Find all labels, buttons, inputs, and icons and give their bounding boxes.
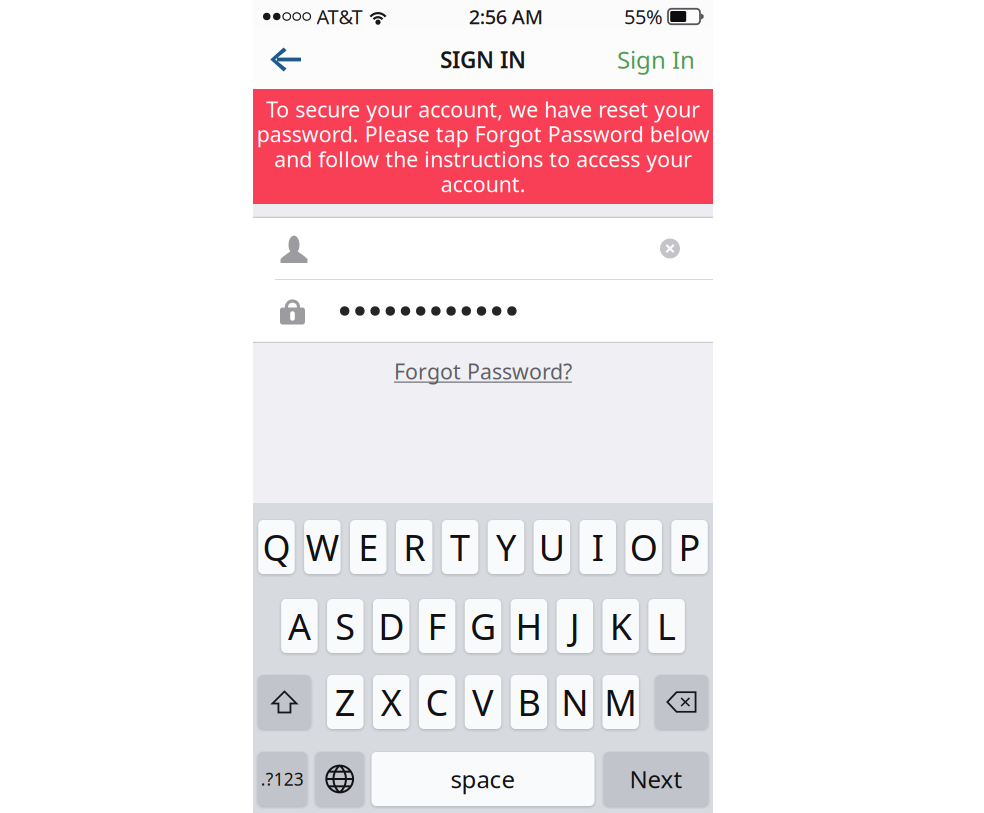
staticText: Z — [335, 678, 356, 726]
staticText: V — [472, 678, 494, 726]
staticText: T — [450, 523, 470, 571]
button[interactable]: Sign In — [603, 29, 713, 90]
staticText: space — [450, 763, 515, 795]
staticText: Y — [496, 523, 516, 571]
staticText: D — [378, 602, 404, 650]
staticText: To secure your account, we have reset yo… — [256, 95, 709, 198]
staticText: Q — [262, 523, 290, 571]
staticText: N — [561, 678, 588, 726]
staticText: Next — [629, 763, 682, 795]
staticText: W — [306, 523, 339, 571]
button[interactable]: Next keyboard — [315, 752, 364, 806]
button[interactable]: Q — [258, 520, 295, 574]
button[interactable]: Y — [488, 520, 524, 574]
button[interactable]: C — [419, 675, 455, 729]
staticText: C — [426, 678, 449, 726]
button[interactable]: N — [556, 675, 593, 729]
button[interactable]: V — [465, 675, 501, 729]
button[interactable]: D — [373, 599, 409, 653]
staticText: G — [470, 602, 496, 650]
staticText: U — [539, 523, 565, 571]
staticText: F — [428, 602, 447, 650]
button[interactable]: Delete — [655, 675, 708, 729]
staticText: X — [381, 678, 402, 726]
button[interactable]: Shift — [258, 675, 311, 729]
staticText: K — [610, 602, 632, 650]
button[interactable]: R — [396, 520, 432, 574]
button[interactable]: X — [373, 675, 409, 729]
button[interactable]: J — [556, 599, 593, 653]
staticText: Sign In — [617, 44, 695, 75]
button[interactable]: A — [281, 599, 318, 653]
button[interactable]: G — [465, 599, 501, 653]
button[interactable]: S — [327, 599, 363, 653]
staticText: A — [288, 602, 311, 650]
staticText: H — [515, 602, 542, 650]
button[interactable]: O — [625, 520, 662, 574]
staticText: R — [403, 523, 425, 571]
button[interactable]: E — [350, 520, 386, 574]
button[interactable]: P — [671, 520, 708, 574]
button[interactable]: Z — [327, 675, 363, 729]
staticText: P — [678, 523, 700, 571]
button[interactable]: Forgot Password? — [386, 353, 580, 389]
button[interactable]: space — [371, 752, 594, 806]
staticText: .?123 — [261, 767, 304, 790]
staticText: SIGN IN — [440, 44, 526, 74]
staticText: 2:56 AM — [469, 3, 543, 30]
button[interactable]: U — [534, 520, 570, 574]
button[interactable]: W — [304, 520, 341, 574]
button[interactable]: Clear text — [653, 231, 687, 265]
button[interactable]: L — [648, 599, 685, 653]
button[interactable]: Next — [604, 752, 708, 806]
staticText: 55% — [624, 3, 663, 30]
button[interactable]: F — [419, 599, 455, 653]
staticText: AT&T — [316, 3, 362, 30]
staticText: M — [604, 678, 637, 726]
staticText: I — [592, 523, 604, 571]
button[interactable]: B — [511, 675, 547, 729]
button[interactable]: M — [602, 675, 639, 729]
staticText: J — [570, 602, 580, 650]
button[interactable]: T — [442, 520, 478, 574]
staticText: O — [630, 523, 658, 571]
staticText: S — [335, 602, 355, 650]
button[interactable]: .?123 — [258, 752, 307, 806]
staticText: E — [358, 523, 378, 571]
staticText: L — [657, 602, 676, 650]
staticText: Forgot Password? — [394, 357, 572, 385]
button[interactable]: I — [579, 520, 616, 574]
button[interactable]: Back — [253, 32, 316, 87]
staticText: B — [517, 678, 540, 726]
button[interactable]: K — [602, 599, 639, 653]
button[interactable]: H — [511, 599, 547, 653]
